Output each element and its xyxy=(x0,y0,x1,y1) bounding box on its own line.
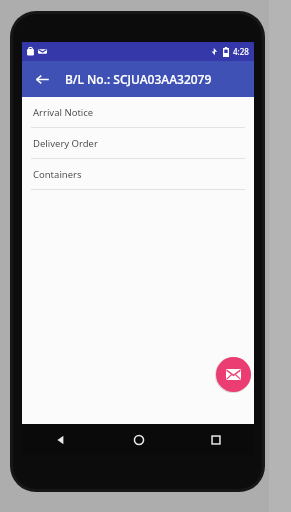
staticText: 4:28 xyxy=(233,46,249,57)
button[interactable]: Back xyxy=(28,65,56,93)
button[interactable]: Back xyxy=(22,424,100,455)
staticText: Arrival Notice xyxy=(33,106,94,119)
staticText: B/L No.: SCJUA03AA32079 xyxy=(65,71,212,87)
button[interactable]: Delivery Order xyxy=(22,128,254,158)
staticText: Delivery Order xyxy=(33,137,98,150)
staticText: Containers xyxy=(33,168,82,181)
button[interactable]: Containers xyxy=(22,159,254,189)
button[interactable]: Recent apps xyxy=(177,424,254,455)
button[interactable]: Compose message xyxy=(216,357,251,392)
button[interactable]: Home xyxy=(100,424,177,455)
button[interactable]: Arrival Notice xyxy=(22,97,254,127)
